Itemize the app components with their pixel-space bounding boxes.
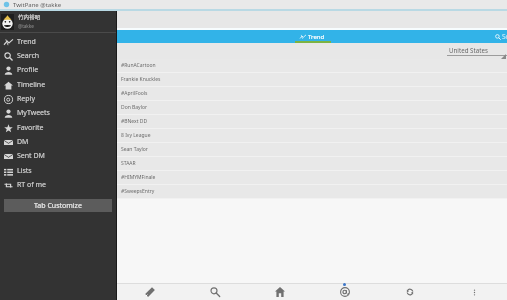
staticText: DM: [17, 137, 29, 147]
button[interactable]: Mentions: [312, 284, 377, 300]
button[interactable]: United States: [447, 43, 507, 56]
staticText: Search: [17, 51, 40, 61]
staticText: Trend: [17, 37, 36, 47]
button[interactable]: Trend: [0, 35, 116, 49]
button[interactable]: Favorite: [0, 121, 116, 135]
button[interactable]: Lists: [0, 164, 116, 178]
staticText: STAAR: [121, 160, 136, 167]
staticText: 8 Ivy League: [121, 132, 151, 139]
button[interactable]: Timeline: [0, 78, 116, 92]
staticText: Sent DM: [17, 151, 45, 161]
staticText: Favorite: [17, 123, 44, 133]
staticText: Timeline: [17, 80, 46, 90]
button[interactable]: Trend: [300, 33, 325, 41]
button[interactable]: Search: [0, 49, 116, 63]
staticText: #AprilFools: [121, 90, 148, 97]
button[interactable]: More: [442, 284, 507, 300]
staticText: 竹内裕昭: [18, 14, 41, 21]
staticText: Don Baylor: [121, 104, 148, 111]
button[interactable]: Profile: [0, 63, 116, 77]
button[interactable]: 8 Ivy League: [117, 129, 507, 142]
button[interactable]: #HIMYMFinale: [117, 171, 507, 184]
staticText: Lists: [17, 166, 32, 176]
button[interactable]: DM: [0, 135, 116, 149]
button[interactable]: 竹内裕昭: [0, 11, 116, 32]
button[interactable]: Home: [247, 284, 312, 300]
staticText: MyTweets: [17, 108, 50, 118]
staticText: Trend: [308, 33, 325, 41]
button[interactable]: Search: [182, 284, 247, 300]
staticText: @takke: [18, 23, 34, 29]
button[interactable]: Don Baylor: [117, 101, 507, 114]
staticText: Profile: [17, 65, 39, 75]
button[interactable]: #BNext DD: [117, 115, 507, 128]
staticText: #BNext DD: [121, 118, 148, 125]
button[interactable]: RT of me: [0, 178, 116, 192]
button[interactable]: Reply: [0, 92, 116, 106]
button[interactable]: MyTweets: [0, 106, 116, 120]
button[interactable]: STAAR: [117, 157, 507, 170]
staticText: Reply: [17, 94, 35, 104]
staticText: United States: [449, 46, 488, 54]
button[interactable]: Frankie Knuckles: [117, 73, 507, 86]
staticText: #RunACartoon: [121, 62, 156, 69]
button[interactable]: Compose: [117, 284, 182, 300]
staticText: Tab Customize: [34, 201, 82, 211]
staticText: Search: [502, 32, 507, 41]
button[interactable]: Search: [495, 32, 507, 41]
staticText: Sean Taylor: [121, 146, 148, 153]
button[interactable]: #SweepsEntry: [117, 185, 507, 198]
button[interactable]: Sean Taylor: [117, 143, 507, 156]
button[interactable]: Refresh: [377, 284, 442, 300]
staticText: Frankie Knuckles: [121, 76, 161, 83]
button[interactable]: #AprilFools: [117, 87, 507, 100]
button[interactable]: Tab Customize: [4, 199, 112, 212]
staticText: TwitPane @takke: [13, 1, 62, 9]
staticText: #SweepsEntry: [121, 188, 155, 195]
button[interactable]: Sent DM: [0, 149, 116, 163]
staticText: RT of me: [17, 180, 47, 190]
button[interactable]: #RunACartoon: [117, 59, 507, 72]
staticText: #HIMYMFinale: [121, 174, 156, 181]
